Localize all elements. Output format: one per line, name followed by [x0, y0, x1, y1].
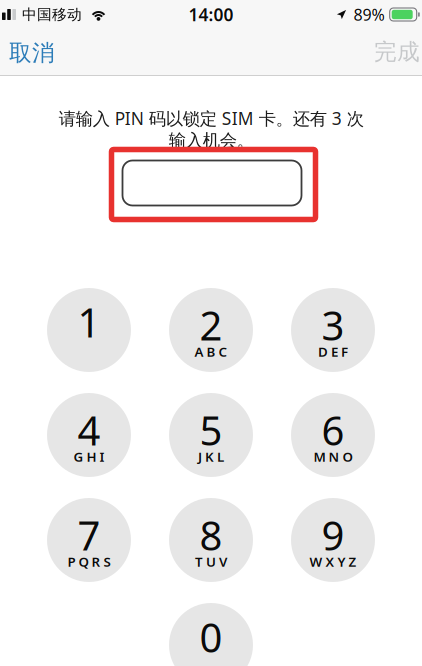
- button[interactable]: 8: [169, 498, 253, 582]
- staticText: 4: [77, 403, 100, 456]
- button[interactable]: 取消: [0, 28, 64, 76]
- staticText: D E F: [318, 343, 348, 360]
- staticText: 7: [77, 508, 100, 561]
- staticText: 3: [321, 298, 344, 351]
- button[interactable]: 5: [169, 393, 253, 477]
- button[interactable]: 9: [291, 498, 375, 582]
- staticText: 5: [199, 403, 222, 456]
- button[interactable]: 6: [291, 393, 375, 477]
- staticText: 完成: [374, 38, 420, 66]
- staticText: G H I: [73, 448, 104, 465]
- staticText: P Q R S: [67, 553, 110, 570]
- button[interactable]: 4: [47, 393, 131, 477]
- staticText: 取消: [9, 39, 55, 67]
- staticText: T U V: [195, 553, 227, 570]
- staticText: W X Y Z: [309, 553, 356, 570]
- staticText: 2: [199, 298, 222, 351]
- button[interactable]: 2: [169, 288, 253, 372]
- staticText: 1: [77, 295, 100, 348]
- button[interactable]: 完成: [372, 30, 422, 74]
- staticText: 8: [199, 508, 222, 561]
- button[interactable]: 1: [47, 288, 131, 372]
- staticText: M N O: [313, 448, 352, 465]
- staticText: 9: [321, 508, 344, 561]
- staticText: 14:00: [188, 3, 233, 26]
- button[interactable]: 3: [291, 288, 375, 372]
- button[interactable]: 0: [169, 603, 253, 666]
- staticText: 请输入 PIN 码以锁定 SIM 卡。还有 3 次 输入机会。: [58, 107, 363, 151]
- staticText: A B C: [194, 343, 227, 360]
- staticText: 89%: [353, 4, 384, 25]
- staticText: 6: [321, 403, 344, 456]
- staticText: 中国移动: [22, 5, 82, 23]
- staticText: J K L: [198, 448, 224, 465]
- staticText: 0: [199, 610, 222, 663]
- button[interactable]: 7: [47, 498, 131, 582]
